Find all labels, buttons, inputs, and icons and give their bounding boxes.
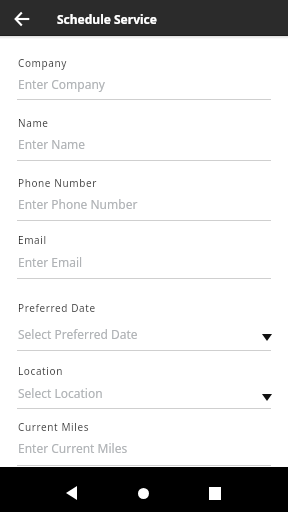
- button[interactable]: [6, 1, 39, 36]
- staticText: Enter Company: [18, 76, 105, 92]
- staticText: Current Miles: [18, 420, 90, 434]
- staticText: Preferred Date: [18, 301, 96, 315]
- button[interactable]: Name: [17, 116, 271, 162]
- button[interactable]: Location: [17, 364, 271, 410]
- staticText: Select Location: [18, 385, 103, 401]
- button[interactable]: Email: [17, 233, 271, 280]
- button[interactable]: Preferred Date: [17, 301, 271, 352]
- staticText: Company: [18, 56, 67, 70]
- button[interactable]: [192, 470, 239, 512]
- button[interactable]: Company: [17, 56, 271, 101]
- staticText: Phone Number: [18, 176, 97, 190]
- staticText: Location: [18, 364, 63, 378]
- staticText: Email: [18, 233, 47, 247]
- staticText: Name: [18, 116, 49, 130]
- button[interactable]: [120, 470, 167, 512]
- staticText: Enter Phone Number: [18, 196, 138, 212]
- staticText: Enter Name: [18, 136, 86, 152]
- staticText: Select Preferred Date: [18, 326, 138, 342]
- button[interactable]: Current Miles: [17, 420, 271, 467]
- button[interactable]: Phone Number: [17, 176, 271, 222]
- button[interactable]: [48, 470, 95, 512]
- staticText: Enter Email: [18, 254, 83, 270]
- staticText: Enter Current Miles: [18, 440, 128, 456]
- staticText: Schedule Service: [57, 11, 157, 27]
